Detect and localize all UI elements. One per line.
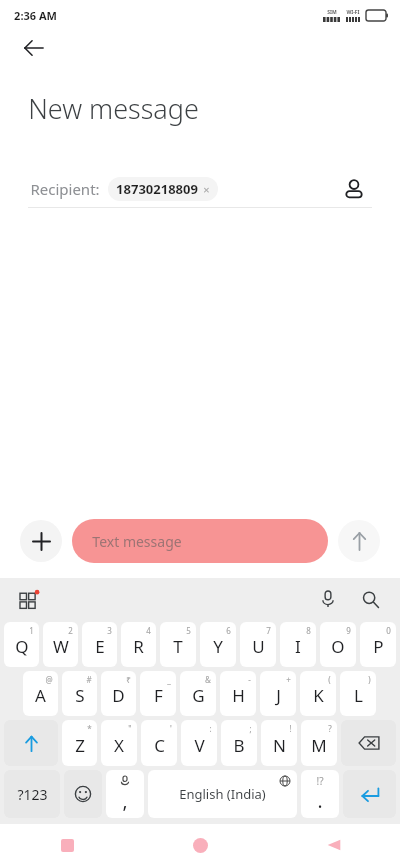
staticText: ?123 [17,785,48,804]
button[interactable]: Toolbox [14,584,44,614]
staticText: 4 [146,625,151,636]
button[interactable]: 6 [200,622,236,667]
staticText: 1 [29,625,34,636]
staticText: 6 [226,625,231,636]
staticText: English (India) [179,785,266,803]
button[interactable]: ) [340,671,376,716]
staticText: L [354,684,363,707]
staticText: " [128,723,132,734]
staticText: V [194,734,205,757]
button[interactable]: Period [301,770,339,818]
staticText: E [95,635,105,658]
button[interactable]: 2 [43,622,78,667]
button[interactable]: 18730218809 [108,177,218,201]
button[interactable]: 7 [240,622,276,667]
button[interactable]: 3 [82,622,117,667]
button[interactable]: ( [300,671,336,716]
staticText: X [114,734,124,757]
button[interactable]: _ [140,671,176,716]
button[interactable]: Home [134,824,267,866]
staticText: S [75,684,85,707]
button[interactable]: @ [23,671,58,716]
staticText: K [313,684,324,707]
staticText: H [232,684,245,707]
staticText: 5 [186,625,191,636]
staticText: A [35,684,46,707]
button[interactable]: Text message [72,519,328,563]
staticText: T [173,635,183,658]
staticText: + [286,674,291,685]
button[interactable]: ? [301,720,337,766]
staticText: U [252,635,265,658]
staticText: × [203,182,210,197]
staticText: R [133,635,144,658]
button[interactable]: Back [267,824,400,866]
staticText: O [331,635,345,658]
staticText: ) [368,674,371,685]
button[interactable]: 0 [360,622,396,667]
staticText: 7 [266,625,271,636]
button[interactable]: 4 [121,622,156,667]
staticText: , [122,788,128,814]
button[interactable]: Emoji [64,770,102,818]
staticText: P [373,635,384,658]
button[interactable]: Enter [343,770,396,818]
button[interactable]: Symbols [4,770,60,818]
button[interactable]: 5 [160,622,196,667]
button[interactable]: Contacts [338,173,370,205]
button[interactable]: : [181,720,217,766]
button[interactable]: 9 [320,622,356,667]
button[interactable]: Add attachment [20,520,62,562]
button[interactable]: ! [261,720,297,766]
staticText: Z [75,734,85,757]
staticText: SIM [327,9,337,16]
button[interactable]: Back [22,30,400,66]
staticText: !? [316,774,324,788]
button[interactable]: * [62,720,97,766]
button[interactable]: ₹ [101,671,136,716]
staticText: 9 [346,625,351,636]
staticText: ₹ [126,674,131,685]
staticText: Q [15,635,29,658]
button[interactable]: Recents [0,824,134,866]
staticText: & [205,674,211,685]
staticText: _ [167,674,171,685]
button[interactable]: Voice input [312,583,344,615]
button[interactable]: Backspace [341,720,396,766]
button[interactable]: " [101,720,137,766]
staticText: 0 [386,625,391,636]
button[interactable]: Search [354,583,386,615]
staticText: - [248,674,251,685]
button[interactable]: ' [141,720,177,766]
staticText: New message [28,90,199,127]
staticText: 8 [306,625,311,636]
button[interactable]: - [220,671,256,716]
staticText: ' [170,723,172,734]
button[interactable]: Shift [4,720,58,766]
staticText: # [86,674,92,685]
staticText: N [273,734,286,757]
button[interactable]: Comma [106,770,144,818]
staticText: 2 [68,625,73,636]
staticText: Text message [92,532,182,551]
staticText: . [317,788,323,814]
staticText: J [276,684,281,707]
staticText: 18730218809 [116,180,198,198]
button[interactable]: + [260,671,296,716]
button[interactable]: 1 [4,622,39,667]
staticText: W [53,635,69,658]
button[interactable]: Space [148,770,297,818]
button[interactable]: # [62,671,97,716]
button[interactable]: & [180,671,216,716]
button[interactable]: 8 [280,622,316,667]
staticText: 3 [107,625,112,636]
button[interactable]: ; [221,720,257,766]
staticText: ! [289,723,292,734]
staticText: : [209,723,212,734]
staticText: M [311,734,327,757]
staticText: I [295,635,301,658]
staticText: D [112,684,125,707]
staticText: ? [328,723,332,734]
button[interactable]: Send [338,520,380,562]
staticText: 2:36 AM [14,8,57,23]
